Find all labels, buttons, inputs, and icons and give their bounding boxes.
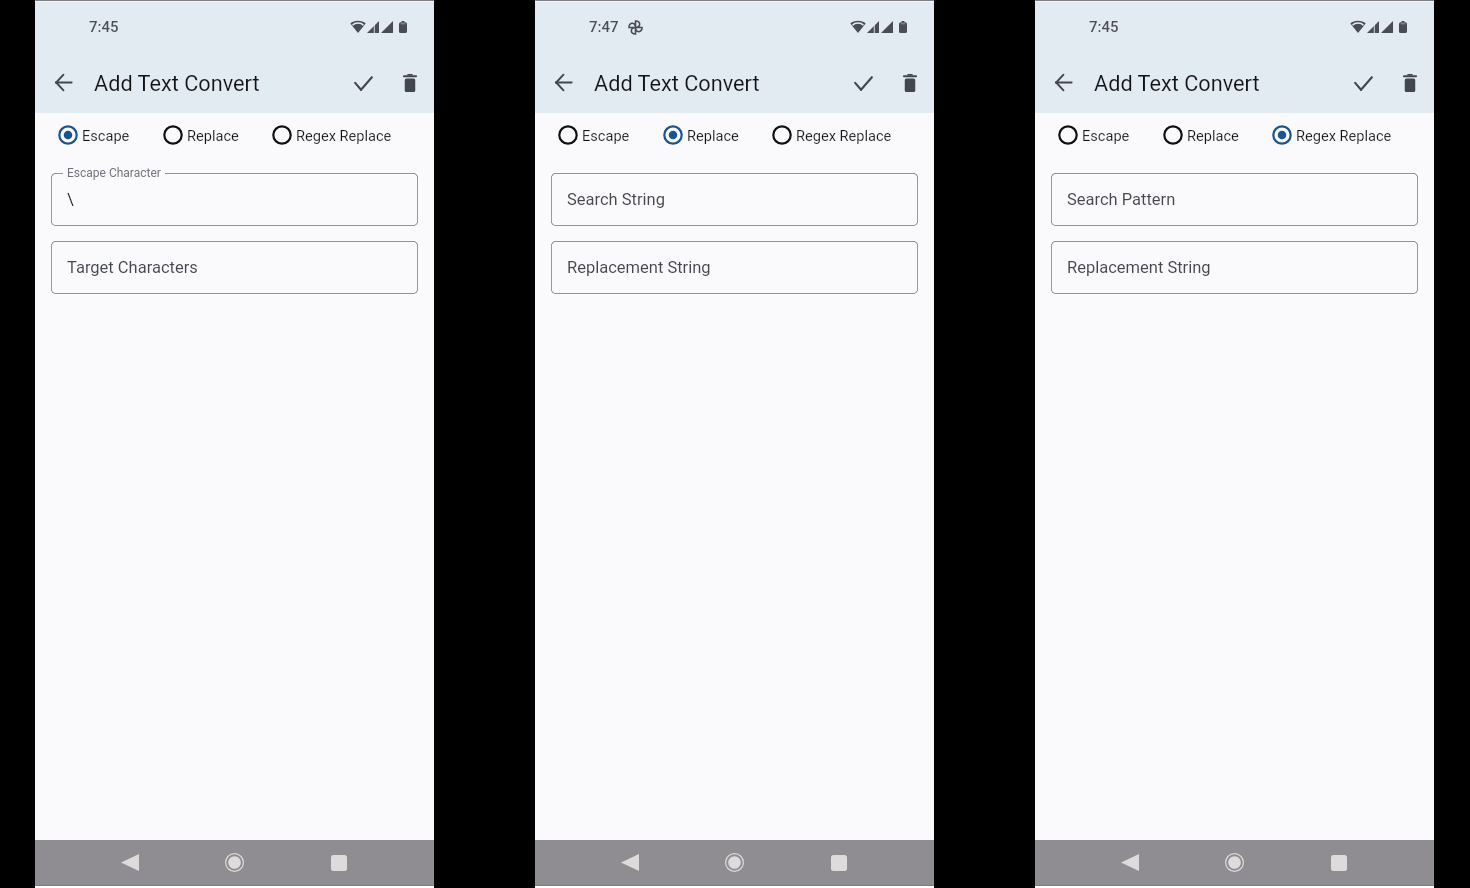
staticText: Search String <box>567 190 665 209</box>
button[interactable]: Save <box>341 61 385 105</box>
staticText: Add Text Convert <box>1094 71 1260 96</box>
button[interactable]: Recent apps <box>1314 840 1363 885</box>
button[interactable]: Home <box>1210 840 1259 885</box>
staticText: Target Characters <box>67 258 198 277</box>
button[interactable]: Escape <box>1058 125 1130 145</box>
button[interactable]: Search Pattern <box>1051 173 1418 226</box>
button[interactable]: Home <box>710 840 759 885</box>
staticText: 7:45 <box>89 18 119 36</box>
button[interactable]: Navigate up <box>1043 63 1083 103</box>
staticText: 7:45 <box>1089 18 1119 36</box>
staticText: Replacement String <box>567 258 711 277</box>
button[interactable]: Back <box>605 840 654 885</box>
staticText: Regex Replace <box>796 127 892 144</box>
staticText: 7:47 <box>589 18 619 36</box>
button[interactable]: Replace <box>163 125 239 145</box>
staticText: Replace <box>687 127 739 144</box>
staticText: Add Text Convert <box>594 71 760 96</box>
staticText: Search Pattern <box>1067 190 1176 209</box>
staticText: Escape Character <box>67 166 161 180</box>
button[interactable]: Save <box>841 61 885 105</box>
button[interactable]: Recent apps <box>814 840 863 885</box>
staticText: Regex Replace <box>1296 127 1392 144</box>
button[interactable]: Back <box>105 840 154 885</box>
button[interactable]: Delete <box>388 61 432 105</box>
staticText: Add Text Convert <box>94 71 260 96</box>
button[interactable]: Regex Replace <box>772 125 892 145</box>
button[interactable]: Search String <box>551 173 918 226</box>
staticText: Regex Replace <box>296 127 392 144</box>
button[interactable]: \ <box>51 173 418 226</box>
button[interactable]: Navigate up <box>543 63 583 103</box>
button[interactable]: Escape <box>58 125 130 145</box>
staticText: Replacement String <box>1067 258 1211 277</box>
staticText: Escape <box>582 127 630 144</box>
staticText: Escape <box>82 127 130 144</box>
button[interactable]: Regex Replace <box>1272 125 1392 145</box>
button[interactable]: Recent apps <box>314 840 363 885</box>
button[interactable]: Regex Replace <box>272 125 392 145</box>
button[interactable]: Home <box>210 840 259 885</box>
staticText: Replace <box>187 127 239 144</box>
button[interactable]: Delete <box>1388 61 1432 105</box>
button[interactable]: Target Characters <box>51 241 418 294</box>
button[interactable]: Save <box>1341 61 1385 105</box>
button[interactable]: Navigate up <box>43 63 83 103</box>
staticText: Escape <box>1082 127 1130 144</box>
staticText: Replace <box>1187 127 1239 144</box>
button[interactable]: Back <box>1105 840 1154 885</box>
button[interactable]: Replace <box>1163 125 1239 145</box>
staticText: \ <box>67 190 74 209</box>
button[interactable]: Replacement String <box>1051 241 1418 294</box>
button[interactable]: Replace <box>663 125 739 145</box>
button[interactable]: Escape <box>558 125 630 145</box>
button[interactable]: Replacement String <box>551 241 918 294</box>
button[interactable]: Delete <box>888 61 932 105</box>
